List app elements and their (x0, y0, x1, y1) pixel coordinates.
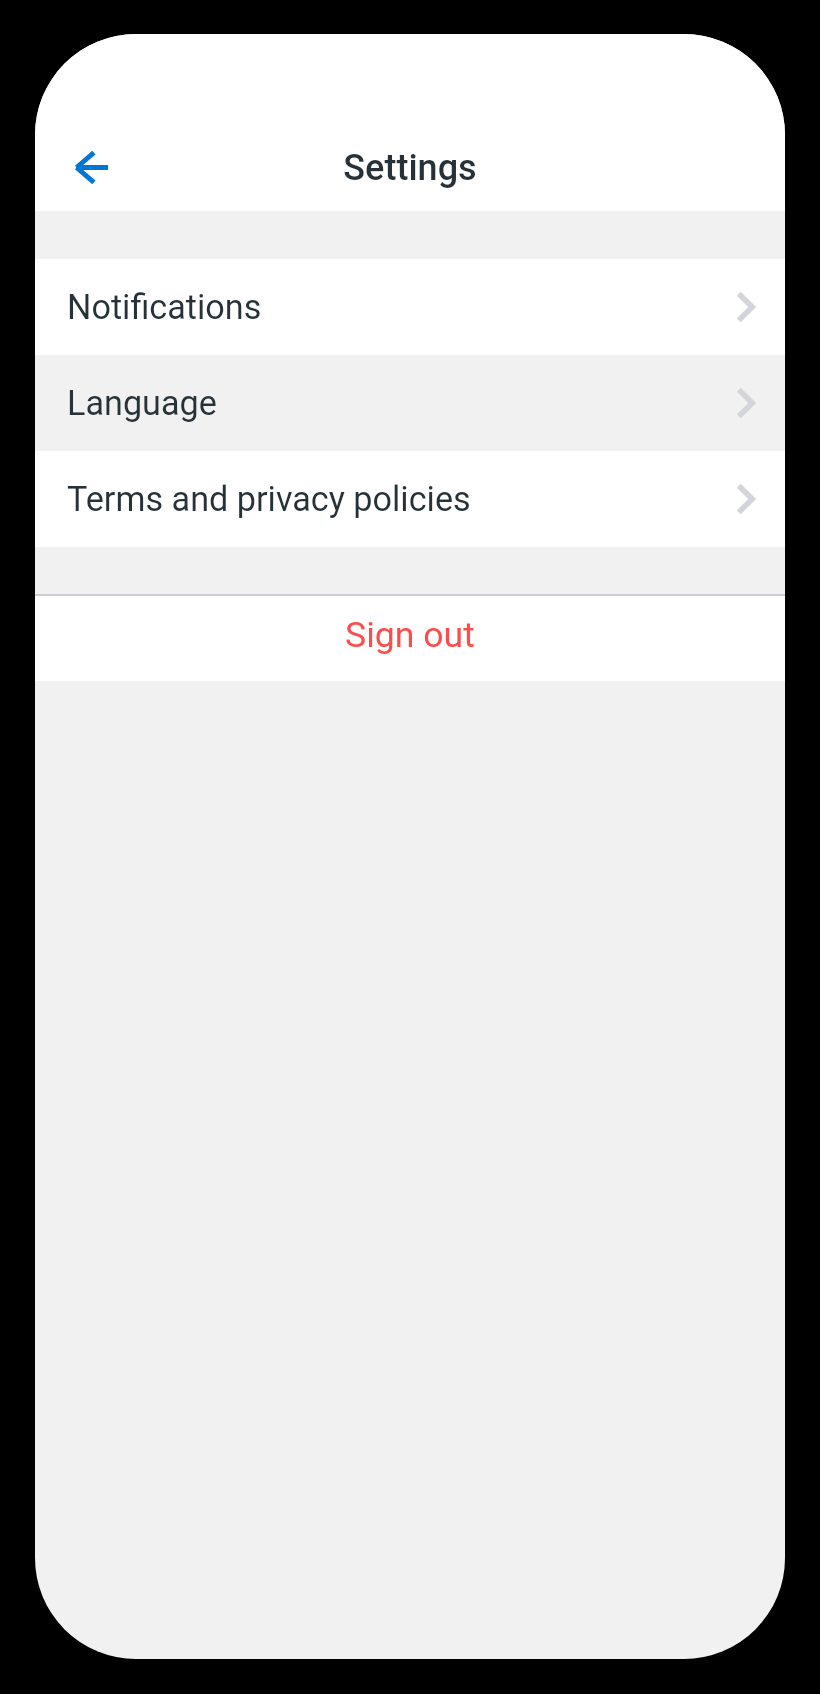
button[interactable]: Sign out (35, 596, 785, 681)
button[interactable]: Back (63, 139, 119, 195)
staticText: Sign out (345, 614, 475, 656)
staticText: Terms and privacy policies (67, 479, 471, 519)
button[interactable]: Language (35, 355, 785, 451)
staticText: Language (67, 383, 217, 423)
button[interactable]: Terms and privacy policies (35, 451, 785, 547)
staticText: Notifications (67, 287, 262, 327)
button[interactable]: Notifications (35, 259, 785, 355)
staticText: Settings (35, 147, 785, 189)
